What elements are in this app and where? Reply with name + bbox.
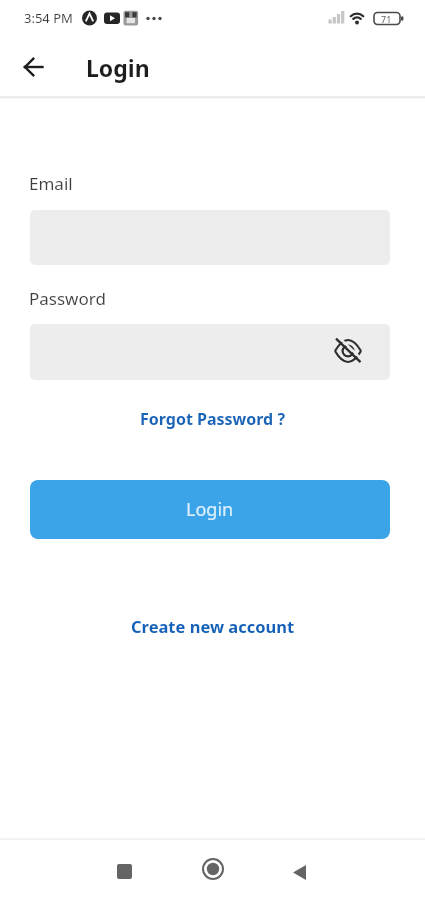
staticText: Login xyxy=(86,52,150,83)
button[interactable]: Create new account xyxy=(131,615,295,637)
button[interactable] xyxy=(100,847,148,895)
button[interactable] xyxy=(275,848,323,896)
button[interactable]: Login xyxy=(30,480,390,539)
button[interactable] xyxy=(30,324,390,380)
staticText: 3:54 PM xyxy=(24,9,73,27)
button[interactable] xyxy=(189,845,237,893)
staticText: Login xyxy=(186,497,234,522)
button[interactable] xyxy=(12,45,56,89)
staticText: 71 xyxy=(381,13,392,25)
staticText: Password xyxy=(29,287,106,310)
staticText: Email xyxy=(29,172,73,195)
button[interactable]: Forgot Password ? xyxy=(140,408,286,430)
